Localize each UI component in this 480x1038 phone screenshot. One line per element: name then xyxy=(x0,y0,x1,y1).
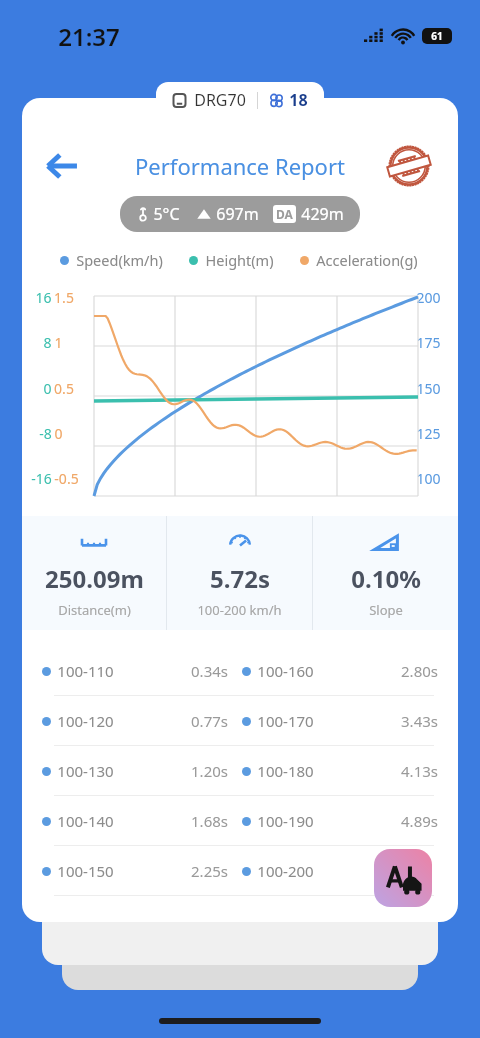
button[interactable]: 100-130 xyxy=(42,746,438,795)
staticText: 1.5 xyxy=(54,288,74,307)
staticText: 100-180 xyxy=(257,761,314,781)
staticText: 250.09m xyxy=(45,562,144,595)
staticText: 200 xyxy=(416,288,441,307)
staticText: 0 xyxy=(54,424,63,443)
staticText: 1.68s xyxy=(191,811,228,831)
button[interactable]: 100-150 xyxy=(42,846,438,895)
staticText: 100-130 xyxy=(57,761,114,781)
staticText: 1 xyxy=(54,333,63,352)
staticText: Speed(km/h) xyxy=(76,250,163,270)
staticText: 2.80s xyxy=(401,661,438,681)
button[interactable]: 250.09m xyxy=(22,516,166,630)
button[interactable]: 5.72s xyxy=(167,516,312,630)
staticText: 100 xyxy=(416,469,441,488)
staticText: 2.25s xyxy=(191,861,228,881)
staticText: 0.34s xyxy=(191,661,228,681)
button[interactable]: 100-120 xyxy=(42,696,438,745)
staticText: Performance Report xyxy=(135,151,345,181)
staticText: 5°C xyxy=(153,203,180,225)
staticText: 429m xyxy=(301,203,344,225)
staticText: 4.89s xyxy=(401,811,438,831)
staticText: 100-200 km/h xyxy=(197,601,282,619)
staticText: 150 xyxy=(416,379,441,398)
button[interactable]: Back xyxy=(40,144,84,188)
staticText: 0.77s xyxy=(191,711,228,731)
staticText: 21:37 xyxy=(58,20,120,53)
staticText: 3.43s xyxy=(401,711,438,731)
button[interactable]: 0.10% xyxy=(313,516,458,630)
staticText: 100-110 xyxy=(57,661,114,681)
staticText: 18 xyxy=(289,89,308,111)
staticText: 125 xyxy=(416,424,441,443)
staticText: 100-150 xyxy=(57,861,114,881)
staticText: 100-170 xyxy=(257,711,314,731)
staticText: 100-140 xyxy=(57,811,114,831)
staticText: 0.5 xyxy=(54,379,74,398)
button[interactable]: DRG70 xyxy=(156,82,324,118)
staticText: Distance(m) xyxy=(58,601,131,619)
staticText: 5.72s xyxy=(210,562,270,595)
staticText: -8 xyxy=(39,424,52,443)
staticText: 175 xyxy=(416,333,441,352)
staticText: Acceleration(g) xyxy=(316,250,418,270)
button[interactable]: 100-140 xyxy=(42,796,438,845)
staticText: 4.13s xyxy=(401,761,438,781)
staticText: 0.10% xyxy=(351,562,421,595)
staticText: 1.20s xyxy=(191,761,228,781)
staticText: DA xyxy=(276,206,293,222)
staticText: Slope xyxy=(369,601,403,619)
staticText: 8 xyxy=(43,333,52,352)
staticText: -0.5 xyxy=(54,469,79,488)
staticText: 61 xyxy=(431,29,443,43)
staticText: Height(m) xyxy=(205,250,274,270)
staticText: 100-190 xyxy=(257,811,314,831)
button[interactable]: 100-110 xyxy=(42,646,438,695)
staticText: -16 xyxy=(31,469,52,488)
staticText: 697m xyxy=(216,203,259,225)
staticText: 100-200 xyxy=(257,861,314,881)
button[interactable]: AI assistant xyxy=(374,849,432,907)
staticText: 16 xyxy=(35,288,52,307)
staticText: DRG70 xyxy=(194,89,246,111)
staticText: 100-160 xyxy=(257,661,314,681)
staticText: 0 xyxy=(43,379,52,398)
staticText: 100-120 xyxy=(57,711,114,731)
